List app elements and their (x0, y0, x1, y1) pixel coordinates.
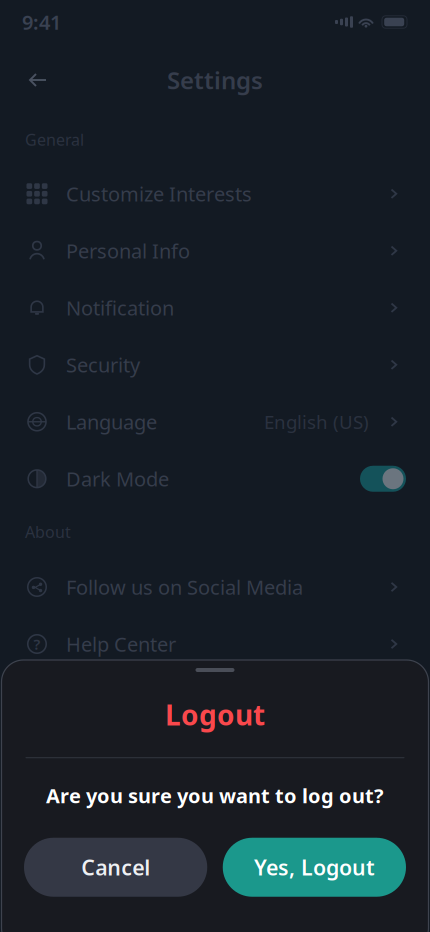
button[interactable]: Back (16, 58, 60, 102)
button[interactable]: Customize Interests (0, 165, 430, 222)
button[interactable]: Cancel (24, 838, 207, 897)
staticText: Personal Info (66, 237, 190, 264)
staticText: Settings (167, 64, 263, 96)
staticText: 9:41 (22, 9, 61, 35)
button[interactable]: Language (0, 393, 430, 450)
staticText: Customize Interests (66, 180, 252, 207)
staticText: Notification (66, 294, 174, 321)
button[interactable]: Dark Mode (0, 450, 430, 507)
staticText: Language (66, 408, 157, 435)
button[interactable]: ? (0, 615, 430, 672)
staticText: Follow us on Social Media (66, 574, 303, 600)
staticText: Security (66, 351, 140, 378)
staticText: Logout (165, 696, 265, 733)
staticText: English (US) (264, 409, 369, 434)
button[interactable]: Yes, Logout (223, 838, 406, 897)
staticText: About (25, 521, 71, 542)
staticText: Cancel (81, 853, 150, 881)
staticText: Dark Mode (66, 465, 169, 492)
staticText: General (25, 129, 84, 150)
staticText: Help Center (66, 631, 176, 657)
button[interactable]: Security (0, 336, 430, 393)
staticText: Are you sure you want to log out? (46, 782, 384, 809)
button[interactable]: Notification (0, 279, 430, 336)
button[interactable]: Follow us on Social Media (0, 558, 430, 615)
staticText: ? (33, 634, 40, 654)
staticText: Yes, Logout (254, 853, 375, 881)
button[interactable]: Personal Info (0, 222, 430, 279)
